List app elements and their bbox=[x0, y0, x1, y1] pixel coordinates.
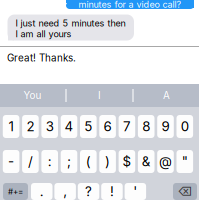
button[interactable]: : bbox=[41, 150, 58, 173]
staticText: A bbox=[163, 89, 170, 101]
button[interactable]: 5 bbox=[80, 115, 97, 138]
button[interactable]: 1 bbox=[3, 115, 19, 138]
button[interactable]: ) bbox=[99, 150, 116, 173]
button[interactable]: " bbox=[176, 150, 193, 173]
button[interactable]: , bbox=[54, 183, 76, 200]
staticText: 0 bbox=[181, 118, 189, 134]
button[interactable]: 4 bbox=[61, 115, 77, 138]
button[interactable]: . bbox=[31, 183, 52, 200]
staticText: I bbox=[98, 89, 101, 101]
button[interactable]: 0 bbox=[176, 115, 193, 138]
staticText: 3 bbox=[46, 118, 54, 134]
button[interactable]: Delete bbox=[173, 183, 197, 200]
button[interactable]: $ bbox=[119, 150, 135, 173]
staticText: & bbox=[142, 153, 151, 169]
button[interactable]: / bbox=[22, 150, 39, 173]
staticText: @ bbox=[159, 153, 172, 169]
button[interactable]: ; bbox=[61, 150, 77, 173]
button[interactable]: You bbox=[0, 84, 65, 107]
button[interactable]: & bbox=[138, 150, 154, 173]
button[interactable]: I bbox=[66, 84, 132, 107]
staticText: , bbox=[63, 183, 67, 199]
button[interactable]: 7 bbox=[119, 115, 135, 138]
button[interactable]: - bbox=[3, 150, 19, 173]
staticText: 8 bbox=[142, 118, 150, 134]
button[interactable]: ? bbox=[78, 183, 99, 200]
button[interactable]: ( bbox=[80, 150, 97, 173]
staticText: : bbox=[48, 153, 52, 169]
staticText: 1 bbox=[9, 118, 14, 134]
staticText: - bbox=[8, 153, 14, 169]
staticText: ( bbox=[86, 153, 91, 169]
button[interactable]: A bbox=[133, 84, 199, 107]
button[interactable]: 3 bbox=[41, 115, 58, 138]
staticText: ; bbox=[67, 153, 71, 169]
staticText: 9 bbox=[161, 118, 169, 134]
staticText: I just need 5 minutes then bbox=[15, 18, 125, 29]
button[interactable]: ' bbox=[125, 183, 146, 200]
staticText: 2 bbox=[26, 118, 34, 134]
staticText: I am all yours bbox=[15, 28, 71, 39]
button[interactable]: 6 bbox=[99, 115, 116, 138]
staticText: ' bbox=[133, 183, 137, 199]
staticText: ! bbox=[110, 183, 114, 199]
button[interactable]: 9 bbox=[157, 115, 174, 138]
staticText: ⌫ bbox=[177, 184, 192, 199]
button[interactable]: 2 bbox=[22, 115, 39, 138]
staticText: ) bbox=[105, 153, 110, 169]
staticText: #+= bbox=[8, 187, 23, 196]
staticText: 7 bbox=[123, 118, 131, 134]
staticText: ? bbox=[85, 183, 92, 199]
staticText: Great! Thanks. bbox=[7, 52, 76, 64]
staticText: 6 bbox=[104, 118, 112, 134]
button[interactable]: #+= bbox=[3, 183, 28, 200]
staticText: $ bbox=[122, 153, 131, 169]
staticText: minutes for a video call? bbox=[78, 0, 181, 10]
button[interactable]: 8 bbox=[138, 115, 154, 138]
staticText: You bbox=[23, 89, 41, 101]
button[interactable]: ! bbox=[101, 183, 123, 200]
staticText: . bbox=[40, 183, 44, 199]
staticText: / bbox=[28, 153, 33, 169]
staticText: 5 bbox=[84, 118, 92, 134]
staticText: 4 bbox=[64, 118, 73, 134]
staticText: " bbox=[182, 153, 188, 169]
button[interactable]: @ bbox=[157, 150, 174, 173]
